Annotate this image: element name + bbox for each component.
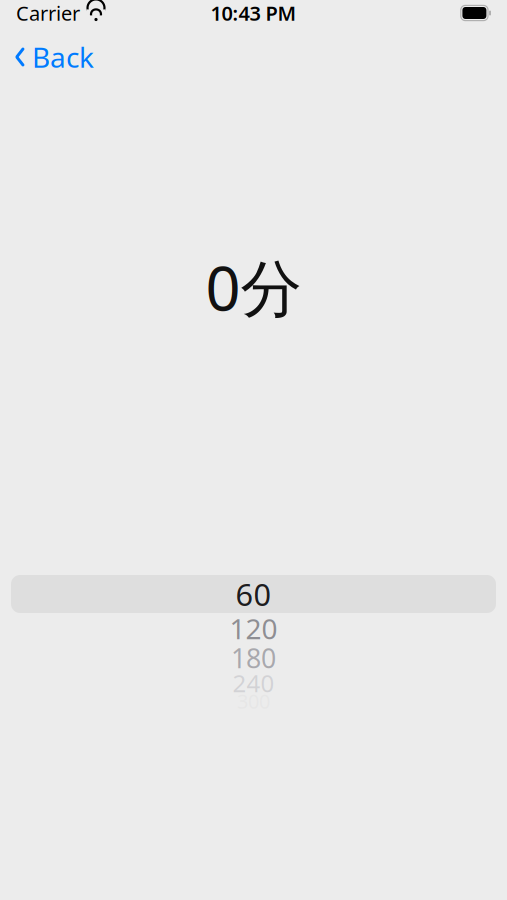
staticText: 240 xyxy=(232,667,274,699)
staticText: 0分 xyxy=(205,246,301,328)
button[interactable]: 240 xyxy=(0,672,507,694)
staticText: Carrier xyxy=(16,0,80,26)
button[interactable]: Back xyxy=(0,35,106,79)
button[interactable]: 180 xyxy=(0,644,507,672)
staticText: 120 xyxy=(229,610,277,647)
button[interactable]: 60 xyxy=(0,575,507,613)
staticText: 180 xyxy=(231,640,276,676)
button[interactable]: 120 xyxy=(0,613,507,644)
staticText: 300 xyxy=(237,688,270,714)
staticText: 60 xyxy=(235,574,271,614)
staticText: Back xyxy=(32,38,94,76)
staticText: 10:43 PM xyxy=(210,0,296,26)
